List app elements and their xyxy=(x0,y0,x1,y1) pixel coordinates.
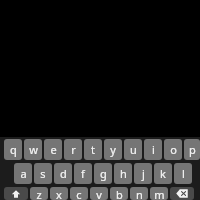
button[interactable]: l xyxy=(174,163,192,184)
staticText: u xyxy=(130,142,137,157)
button[interactable]: s xyxy=(34,163,52,184)
button[interactable]: t xyxy=(84,139,102,160)
staticText: t xyxy=(91,142,95,157)
staticText: d xyxy=(60,166,67,181)
staticText: a xyxy=(20,166,27,181)
button[interactable]: g xyxy=(94,163,112,184)
button[interactable]: r xyxy=(64,139,82,160)
staticText: q xyxy=(10,142,17,157)
staticText: l xyxy=(182,166,185,181)
button[interactable]: c xyxy=(70,187,88,200)
button[interactable]: m xyxy=(150,187,168,200)
staticText: p xyxy=(189,142,196,157)
button[interactable]: b xyxy=(110,187,128,200)
button[interactable]: v xyxy=(90,187,108,200)
button[interactable]: n xyxy=(130,187,148,200)
button[interactable]: z xyxy=(30,187,48,200)
staticText: v xyxy=(96,187,102,200)
staticText: j xyxy=(142,166,145,181)
button[interactable]: w xyxy=(24,139,42,160)
button[interactable]: k xyxy=(154,163,172,184)
staticText: m xyxy=(154,187,165,200)
staticText: e xyxy=(50,142,57,157)
staticText: f xyxy=(81,166,85,181)
button[interactable]: a xyxy=(14,163,32,184)
staticText: h xyxy=(120,166,127,181)
staticText: r xyxy=(71,142,76,157)
button[interactable]: y xyxy=(104,139,122,160)
staticText: o xyxy=(170,142,177,157)
staticText: w xyxy=(29,142,38,157)
staticText: s xyxy=(40,166,46,181)
button[interactable]: p xyxy=(184,139,200,160)
button[interactable]: u xyxy=(124,139,142,160)
staticText: z xyxy=(36,187,42,200)
button[interactable]: x xyxy=(50,187,68,200)
staticText: x xyxy=(56,187,62,200)
staticText: c xyxy=(76,187,82,200)
button[interactable]: d xyxy=(54,163,72,184)
staticText: k xyxy=(160,166,166,181)
staticText: y xyxy=(110,142,116,157)
button[interactable]: Shift xyxy=(4,187,28,200)
button[interactable]: j xyxy=(134,163,152,184)
button[interactable]: e xyxy=(44,139,62,160)
button[interactable]: q xyxy=(4,139,22,160)
button[interactable]: o xyxy=(164,139,182,160)
button[interactable]: i xyxy=(144,139,162,160)
button[interactable]: f xyxy=(74,163,92,184)
button[interactable]: Backspace xyxy=(170,187,194,200)
staticText: g xyxy=(100,166,107,181)
button[interactable]: h xyxy=(114,163,132,184)
staticText: i xyxy=(152,142,155,157)
staticText: b xyxy=(116,187,123,200)
staticText: n xyxy=(136,187,143,200)
